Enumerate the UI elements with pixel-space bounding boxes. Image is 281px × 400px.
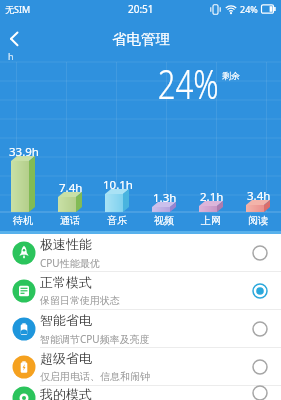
staticText: 智能省电	[40, 312, 92, 328]
staticText: 仅启用电话、信息和闹钟	[40, 370, 150, 383]
staticText: 24%	[240, 3, 258, 15]
staticText: 阅读	[248, 214, 268, 227]
staticText: 3.4h	[247, 188, 271, 204]
staticText: 24%	[158, 55, 219, 110]
staticText: 保留日常使用状态	[40, 294, 120, 307]
button[interactable]	[0, 22, 36, 56]
staticText: 10.1h	[103, 177, 133, 193]
staticText: 省电管理	[112, 30, 170, 48]
button[interactable]: 超级省电	[0, 348, 281, 386]
staticText: 视频	[154, 214, 174, 227]
staticText: 智能调节CPU频率及亮度	[40, 332, 150, 346]
button[interactable]: 极速性能	[0, 234, 281, 272]
staticText: 正常模式	[40, 274, 92, 290]
button[interactable]: 正常模式	[0, 272, 281, 310]
staticText: 33.9h	[9, 144, 39, 160]
staticText: 通话	[60, 214, 80, 227]
staticText: 无SIM	[5, 3, 31, 15]
staticText: 我的模式	[40, 386, 92, 400]
staticText: 上网	[201, 214, 221, 227]
button[interactable]: 智能省电	[0, 310, 281, 348]
staticText: 音乐	[107, 214, 127, 227]
staticText: 超级省电	[40, 350, 92, 366]
staticText: 2.1h	[200, 189, 224, 205]
staticText: 20:51	[128, 2, 154, 16]
staticText: 待机	[13, 214, 33, 227]
staticText: h	[8, 50, 14, 62]
button[interactable]: 我的模式	[0, 386, 281, 400]
staticText: 1.3h	[153, 190, 177, 206]
staticText: 7.4h	[59, 180, 83, 196]
staticText: 剩余	[222, 70, 240, 81]
staticText: 极速性能	[40, 236, 92, 252]
staticText: CPU性能最优	[40, 256, 100, 270]
